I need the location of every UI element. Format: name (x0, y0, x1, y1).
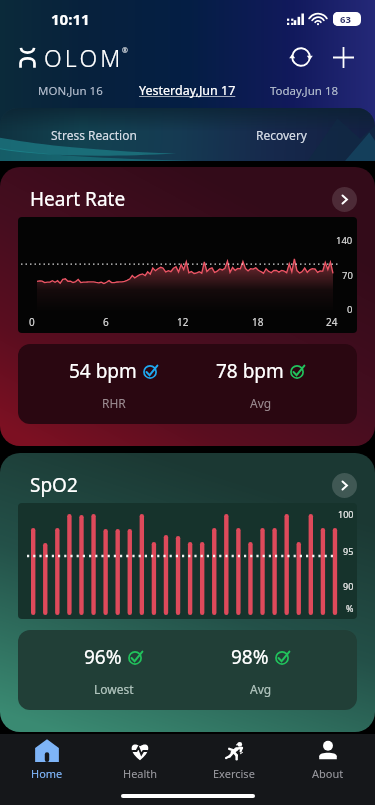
button[interactable]: Yesterday,Jun 17 (129, 76, 246, 105)
staticText: Health (123, 766, 158, 781)
button[interactable]: Health (93, 735, 187, 786)
staticText: ® (122, 46, 128, 56)
button[interactable]: 98% (187, 630, 334, 710)
button[interactable]: SpO2 (0, 453, 375, 732)
staticText: Avg (250, 681, 272, 697)
staticText: 12 (177, 315, 189, 329)
staticText: Exercise (213, 766, 255, 781)
staticText: 18 (252, 315, 264, 329)
button[interactable]: Home (0, 735, 93, 786)
staticText: 63 (340, 13, 351, 26)
staticText: 90 (343, 580, 354, 592)
staticText: About (312, 766, 344, 781)
button[interactable]: Heart Rate (0, 167, 375, 446)
staticText: 10:11 (51, 9, 90, 29)
staticText: 54 bpm (69, 358, 137, 384)
button[interactable]: 78 bpm (187, 344, 334, 424)
staticText: 95 (343, 545, 354, 557)
staticText: 140 (336, 234, 353, 247)
button[interactable]: Open details (332, 187, 357, 212)
button[interactable]: Exercise (187, 735, 281, 786)
staticText: % (346, 602, 354, 614)
staticText: SpO2 (30, 472, 78, 498)
staticText: Avg (250, 395, 272, 411)
staticText: Yesterday,Jun 17 (139, 82, 236, 99)
staticText: Heart Rate (30, 186, 126, 212)
button[interactable]: Add (322, 38, 364, 76)
button[interactable]: Stress Reaction (0, 108, 375, 161)
staticText: 78 bpm (216, 358, 284, 384)
button[interactable]: 96% (41, 630, 187, 710)
staticText: 96% (84, 644, 122, 670)
staticText: 6 (103, 315, 109, 329)
staticText: 100 (338, 508, 354, 520)
button[interactable]: Today,Jun 18 (246, 76, 363, 105)
staticText: 98% (231, 644, 269, 670)
staticText: Lowest (94, 681, 134, 697)
staticText: 70 (342, 269, 353, 282)
staticText: RHR (102, 395, 126, 411)
staticText: Home (31, 766, 63, 781)
staticText: OLOM (44, 42, 124, 73)
staticText: Recovery (256, 127, 307, 143)
staticText: 0 (347, 303, 353, 316)
button[interactable]: About (281, 735, 375, 786)
staticText: Stress Reaction (51, 127, 137, 143)
button[interactable]: Sync (280, 38, 322, 76)
staticText: MON,Jun 16 (38, 83, 103, 99)
staticText: 0 (29, 315, 35, 329)
staticText: 24 (326, 315, 338, 329)
button[interactable]: Open details (332, 473, 357, 498)
button[interactable]: MON,Jun 16 (12, 76, 129, 105)
staticText: Today,Jun 18 (270, 83, 339, 99)
button[interactable]: 54 bpm (41, 344, 187, 424)
